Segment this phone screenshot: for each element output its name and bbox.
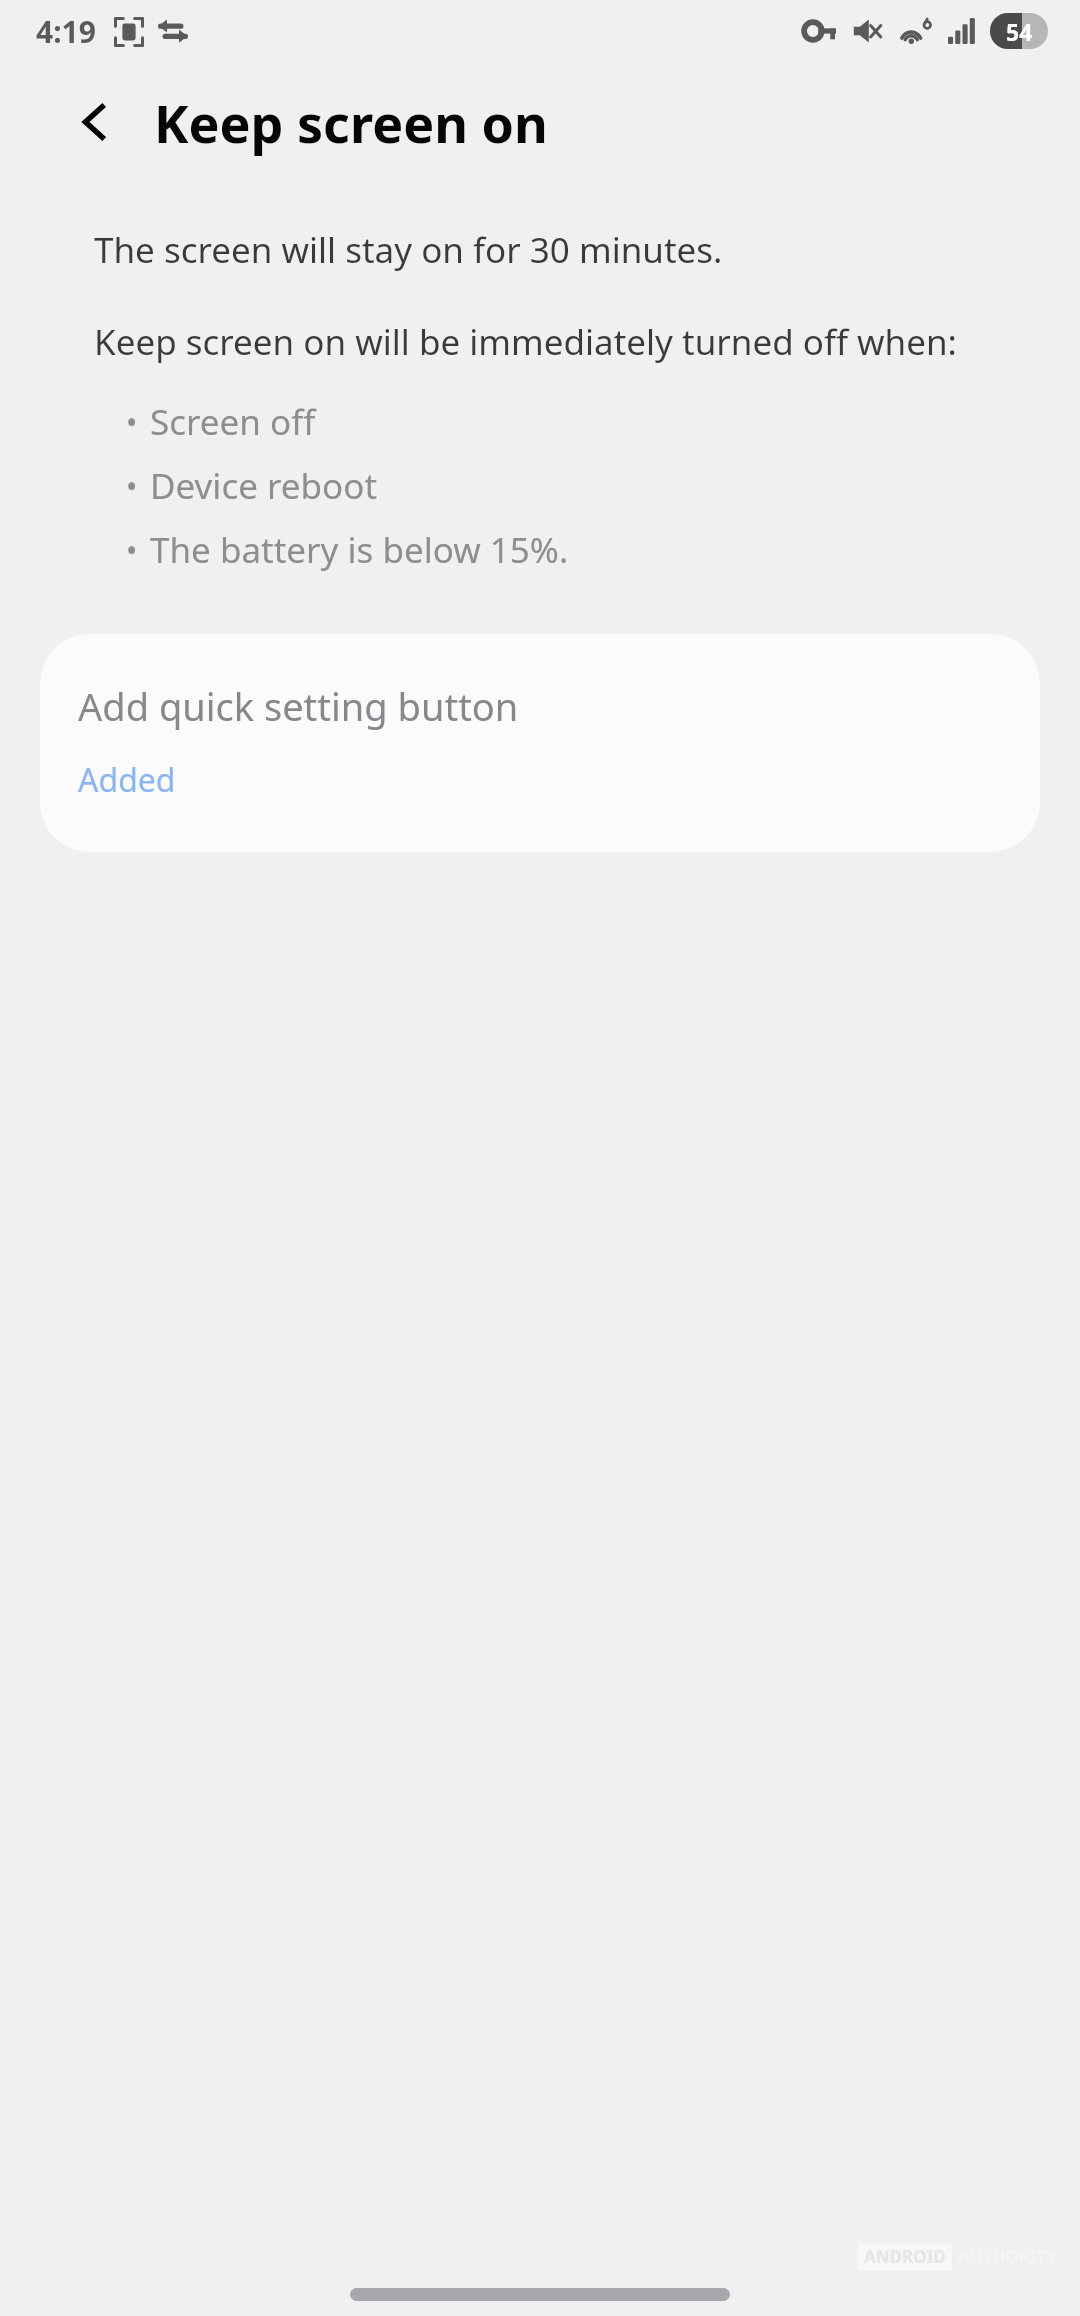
staticText: Screen off [150,398,316,446]
staticText: The battery is below 15%. [150,526,569,574]
staticText: Keep screen on will be immediately turne… [94,318,957,366]
staticText: ANDROID [864,2245,946,2268]
button[interactable]: Back [62,89,128,155]
staticText: • [126,466,138,507]
staticText: • [126,530,138,571]
staticText: Keep screen on [154,87,548,158]
staticText: Add quick setting button [78,680,519,732]
button[interactable]: Add quick setting button [40,634,1040,852]
staticText: 54 [1006,16,1033,47]
staticText: The screen will stay on for 30 minutes. [94,226,723,274]
staticText: Device reboot [150,462,378,510]
staticText: Added [78,758,176,802]
staticText: • [126,402,138,443]
staticText: 4:19 [36,11,96,52]
